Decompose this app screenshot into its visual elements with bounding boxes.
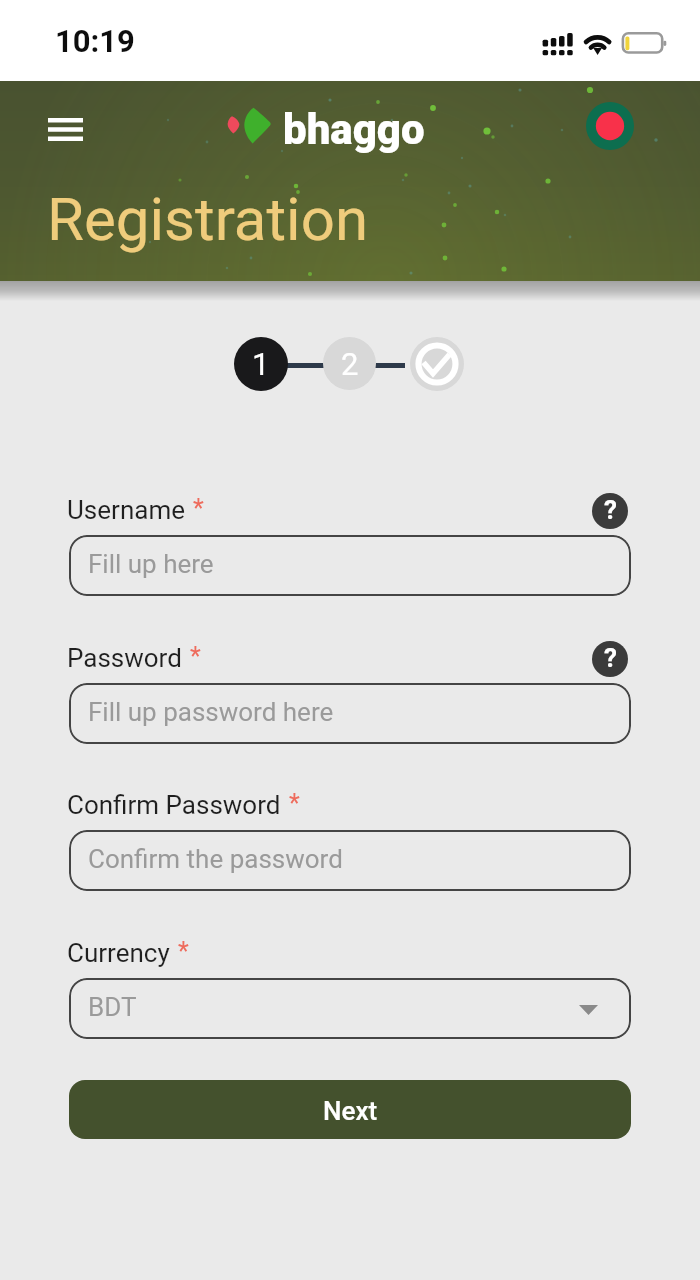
button[interactable]: Confirm the password — [69, 830, 631, 891]
staticText: * — [178, 937, 189, 966]
staticText: bhaggo — [283, 105, 425, 154]
staticText: Currency — [67, 938, 170, 968]
button[interactable]: Next — [69, 1080, 631, 1139]
staticText: Confirm Password — [67, 790, 281, 820]
staticText: BDT — [88, 992, 137, 1022]
staticText: Next — [323, 1096, 378, 1126]
staticText: Registration — [47, 184, 369, 254]
staticText: ? — [604, 643, 617, 673]
button[interactable]: 1 — [234, 337, 288, 391]
staticText: Fill up password here — [88, 697, 334, 727]
button[interactable]: Help — [592, 493, 628, 529]
staticText: Confirm the password — [88, 844, 343, 874]
staticText: Username — [67, 495, 185, 525]
staticText: Fill up here — [88, 549, 214, 579]
staticText: ? — [604, 495, 617, 525]
button[interactable]: Menu — [36, 104, 94, 154]
staticText: * — [190, 642, 201, 671]
button[interactable]: Completed — [410, 337, 464, 391]
button[interactable]: Fill up password here — [69, 683, 631, 744]
button[interactable]: Fill up here — [69, 535, 631, 596]
button[interactable]: 2 — [323, 337, 376, 390]
staticText: Password — [67, 643, 182, 673]
staticText: * — [289, 789, 300, 818]
staticText: 1 — [252, 346, 270, 382]
button[interactable]: Language — [580, 96, 640, 156]
button[interactable]: Help — [592, 641, 628, 677]
button[interactable]: BDT — [69, 978, 631, 1039]
staticText: 2 — [341, 346, 359, 382]
staticText: 10:19 — [55, 23, 135, 59]
staticText: * — [193, 494, 204, 523]
